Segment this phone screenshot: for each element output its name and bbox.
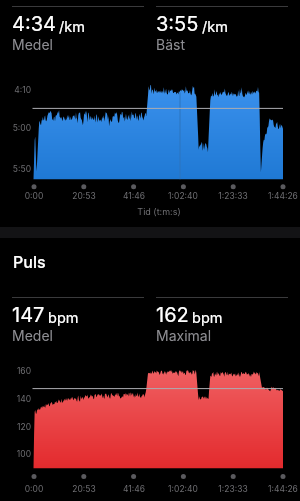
- button[interactable]: 4:34: [12, 6, 144, 53]
- staticText: 4:34: [12, 12, 56, 36]
- staticText: 147: [12, 303, 45, 327]
- staticText: 20:53: [62, 191, 106, 201]
- staticText: 140: [4, 394, 31, 404]
- staticText: 20:53: [62, 484, 106, 494]
- staticText: Maximal: [156, 327, 212, 344]
- staticText: 1:44:26: [261, 191, 300, 201]
- staticText: 0:00: [12, 484, 56, 494]
- staticText: Medel: [12, 327, 53, 344]
- staticText: bpm: [48, 309, 79, 327]
- staticText: Tid (t:m:s): [34, 206, 284, 217]
- staticText: bpm: [192, 309, 223, 327]
- staticText: 1:02:40: [161, 484, 205, 494]
- staticText: /km: [59, 18, 85, 36]
- staticText: 160: [4, 366, 31, 376]
- staticText: 1:44:26: [261, 484, 300, 494]
- staticText: Medel: [12, 36, 53, 53]
- staticText: 4:10: [4, 85, 31, 95]
- button[interactable]: 162: [156, 297, 288, 344]
- button[interactable]: 3:55: [156, 6, 288, 53]
- staticText: 1:23:33: [211, 191, 255, 201]
- button[interactable]: 147: [12, 297, 144, 344]
- staticText: Bäst: [156, 36, 185, 53]
- staticText: 5:50: [4, 164, 31, 174]
- staticText: 162: [156, 303, 189, 327]
- staticText: 100: [4, 449, 31, 459]
- staticText: 3:55: [156, 12, 199, 36]
- staticText: 41:46: [112, 484, 156, 494]
- staticText: 41:46: [112, 191, 156, 201]
- staticText: Puls: [13, 252, 46, 271]
- staticText: 120: [4, 422, 31, 432]
- staticText: 5:00: [4, 123, 31, 133]
- staticText: /km: [202, 18, 228, 36]
- staticText: 1:23:33: [211, 484, 255, 494]
- staticText: 1:02:40: [161, 191, 205, 201]
- staticText: 0:00: [12, 191, 56, 201]
